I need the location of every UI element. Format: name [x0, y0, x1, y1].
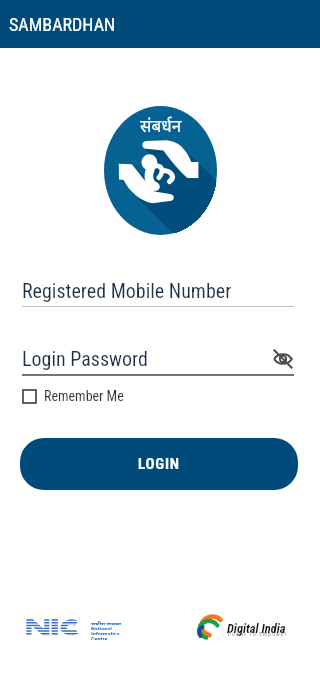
staticText: Power To Empower [228, 631, 288, 637]
button[interactable]: Show password [270, 346, 296, 372]
staticText: Login Password [22, 347, 148, 370]
staticText: Centre [91, 635, 108, 640]
staticText: राष्ट्रीय सूचना [91, 620, 122, 625]
staticText: Remember Me [44, 388, 124, 404]
button[interactable]: LOGIN [20, 438, 298, 490]
staticText: LOGIN [138, 455, 180, 473]
staticText: SAMBARDHAN [9, 14, 116, 35]
button[interactable]: Remember Me [22, 388, 124, 404]
staticText: Informatics [91, 630, 120, 635]
staticText: National [91, 625, 112, 630]
staticText: संबर्धन [140, 114, 182, 137]
staticText: Digital India [227, 621, 286, 636]
staticText: Registered Mobile Number [22, 279, 232, 302]
